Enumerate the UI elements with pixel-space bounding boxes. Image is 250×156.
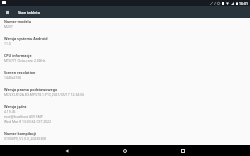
button[interactable]: Home xyxy=(108,145,142,156)
button[interactable]: Wersja pasma podstawowego xyxy=(4,85,250,102)
staticText: MT6771 Octa-core 2.0GHz xyxy=(4,58,46,63)
button[interactable]: Wersja jądra xyxy=(4,102,250,129)
staticText: 4.19.45 root@localhost #09 SMP Wed Mar 8… xyxy=(4,109,51,124)
button[interactable]: Recent apps xyxy=(166,145,200,156)
button[interactable]: Screen resolution xyxy=(4,68,250,85)
staticText: Numer kompilacji xyxy=(4,131,36,136)
staticText: Numer modelu xyxy=(4,19,32,24)
staticText: Wersja jądra xyxy=(4,104,27,109)
staticText: 1440x2160 xyxy=(4,75,22,80)
button[interactable]: Wersja systemu Android xyxy=(4,34,250,51)
button[interactable]: Menu xyxy=(0,6,14,18)
staticText: V1000P9_V1.0.0_20230308 xyxy=(4,136,46,141)
button[interactable]: CPU informacje xyxy=(4,51,250,68)
staticText: MOLY.LR12A.R3.MP.V78.1.P13,2021/05/17 12… xyxy=(4,92,85,97)
staticText: 16:01 xyxy=(239,1,248,6)
staticText: Wersja pasma podstawowego xyxy=(4,87,58,92)
staticText: Stan tabletu xyxy=(18,10,41,15)
staticText: CPU informacje xyxy=(4,53,32,58)
button[interactable]: Numer kompilacji xyxy=(4,129,250,144)
button[interactable]: Back xyxy=(50,145,84,156)
staticText: M20T xyxy=(4,24,13,29)
staticText: Wersja systemu Android xyxy=(4,36,48,41)
staticText: 11.0 xyxy=(4,41,11,46)
button[interactable]: Numer modelu xyxy=(4,17,250,34)
staticText: Screen resolution xyxy=(4,70,36,75)
